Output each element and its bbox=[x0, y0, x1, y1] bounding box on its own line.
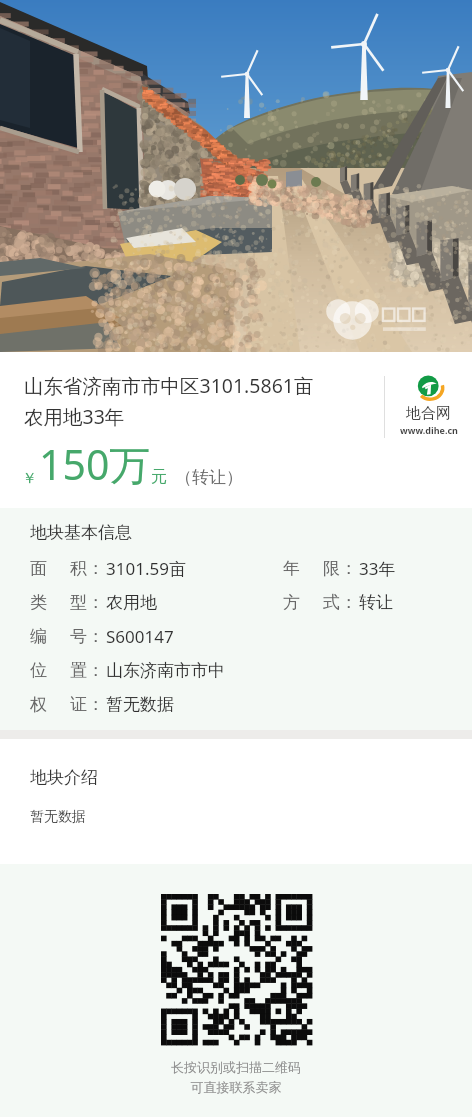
staticText: 地块介绍 bbox=[30, 767, 98, 788]
staticText: 型： bbox=[70, 592, 104, 613]
staticText: 暂无数据 bbox=[106, 694, 174, 715]
staticText: 地合网 bbox=[406, 404, 451, 423]
staticText: 权 bbox=[30, 694, 47, 715]
staticText: 位 bbox=[30, 660, 47, 681]
staticText: 转让 bbox=[359, 592, 393, 613]
staticText: 式： bbox=[323, 592, 357, 613]
staticText: 3101.59亩 bbox=[106, 557, 186, 580]
staticText: 150万 bbox=[39, 436, 151, 492]
staticText: 类 bbox=[30, 592, 47, 613]
staticText: 置： bbox=[70, 660, 104, 681]
staticText: 积： bbox=[70, 558, 104, 579]
staticText: 暂无数据 bbox=[30, 808, 86, 826]
staticText: www.dihe.cn bbox=[400, 424, 458, 436]
staticText: 地块基本信息 bbox=[30, 522, 132, 543]
staticText: 限： bbox=[323, 558, 357, 579]
staticText: 长按识别或扫描二维码 可直接联系卖家 bbox=[171, 1059, 301, 1096]
staticText: 33年 bbox=[359, 557, 396, 580]
staticText: S600147 bbox=[106, 625, 174, 648]
staticText: 年 bbox=[283, 558, 300, 579]
staticText: 方 bbox=[283, 592, 300, 613]
staticText: 号： bbox=[70, 626, 104, 647]
staticText: 编 bbox=[30, 626, 47, 647]
button[interactable]: dihe.cn bbox=[385, 374, 472, 436]
staticText: 山东省济南市市中区3101.5861亩 农用地33年 bbox=[24, 372, 378, 429]
staticText: 面 bbox=[30, 558, 47, 579]
staticText: （转让） bbox=[175, 467, 243, 488]
staticText: 农用地 bbox=[106, 592, 157, 613]
staticText: ￥ bbox=[22, 469, 37, 488]
staticText: 山东济南市市中 bbox=[106, 660, 225, 681]
staticText: 元 bbox=[151, 467, 167, 487]
staticText: 证： bbox=[70, 694, 104, 715]
